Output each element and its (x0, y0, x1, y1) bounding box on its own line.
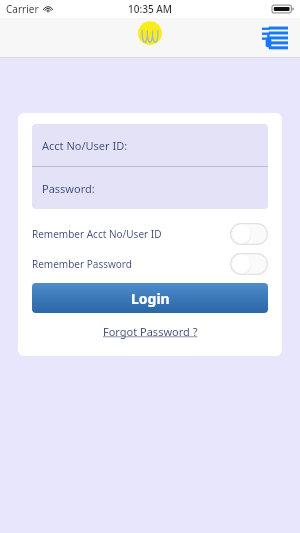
button[interactable]: Login (32, 283, 268, 313)
button[interactable]: Remember Password (32, 253, 268, 275)
button[interactable]: Remember Acct No/User ID (32, 223, 268, 245)
staticText: Password: (42, 181, 95, 196)
staticText: Login (131, 289, 170, 308)
button[interactable]: Toggle (230, 223, 268, 245)
staticText: Remember Password (32, 257, 132, 271)
button[interactable]: Menu (258, 21, 292, 55)
button[interactable]: Toggle (230, 253, 268, 275)
staticText: Remember Acct No/User ID (32, 227, 162, 241)
staticText: Acct No/User ID: (42, 138, 128, 153)
staticText: Carrier (6, 2, 39, 16)
button[interactable]: Acct No/User ID: (32, 124, 268, 166)
button[interactable]: Forgot Password ? (97, 322, 204, 341)
button[interactable]: Password: (32, 167, 268, 209)
staticText: Forgot Password ? (103, 324, 198, 339)
staticText: 10:35 AM (128, 2, 172, 16)
button[interactable]: Home (128, 18, 172, 58)
